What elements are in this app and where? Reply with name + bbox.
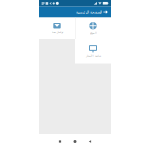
staticText: شاشة الأسعار [85,54,100,57]
staticText: الموقع [89,31,96,34]
button[interactable]: Recent apps [52,134,67,150]
button[interactable]: Home [67,134,82,150]
button[interactable]: الموقع [75,17,111,39]
button[interactable]: شاشة الأسعار [75,39,111,63]
staticText: تواصل معنا [51,30,63,33]
button[interactable]: Forward [102,9,110,14]
staticText: الصفحة الرئيسية [76,10,102,14]
button[interactable]: Back [82,134,97,150]
button[interactable]: تواصل معنا [39,17,75,39]
